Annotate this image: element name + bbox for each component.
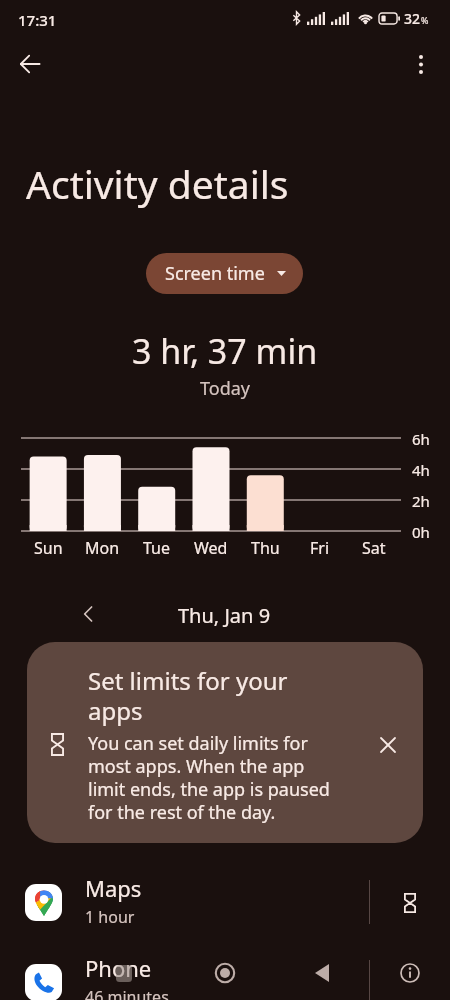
staticText: Activity details xyxy=(26,157,289,210)
staticText: Thu xyxy=(251,537,280,559)
staticText: Mon xyxy=(85,537,120,559)
staticText: 4h xyxy=(412,460,430,480)
staticText: Set limits for your apps xyxy=(88,664,336,727)
staticText: Phone xyxy=(85,953,152,983)
button[interactable]: Recent apps xyxy=(102,951,146,995)
staticText: Screen time xyxy=(165,261,265,286)
staticText: Fri xyxy=(310,537,330,559)
button[interactable]: Dismiss xyxy=(375,732,401,758)
button[interactable]: Previous day xyxy=(70,596,106,632)
button[interactable]: Phone xyxy=(0,955,450,1000)
staticText: 1 hour xyxy=(85,906,135,928)
staticText: 3 hr, 37 min xyxy=(132,328,318,374)
staticText: Wed xyxy=(194,537,228,559)
staticText: 2h xyxy=(412,491,430,511)
staticText: Sun xyxy=(34,537,63,559)
staticText: Maps xyxy=(85,873,142,903)
button[interactable]: Back xyxy=(8,42,52,86)
staticText: 6h xyxy=(412,429,430,449)
button[interactable]: Back xyxy=(300,951,344,995)
staticText: 46 minutes xyxy=(85,986,169,1000)
button[interactable]: Info xyxy=(388,951,432,995)
button[interactable]: Set limits for your apps xyxy=(27,642,423,843)
staticText: Today xyxy=(200,376,250,401)
button[interactable]: Set app timer xyxy=(394,887,426,919)
staticText: Tue xyxy=(143,537,171,559)
button[interactable]: More options xyxy=(399,42,443,86)
button[interactable]: Maps xyxy=(0,875,450,931)
staticText: % xyxy=(421,14,429,26)
staticText: 0h xyxy=(412,522,430,542)
staticText: You can set daily limits for most apps. … xyxy=(88,731,336,824)
staticText: 32 xyxy=(404,9,421,27)
staticText: Sat xyxy=(362,537,386,559)
staticText: 17:31 xyxy=(18,10,57,30)
staticText: Thu, Jan 9 xyxy=(178,602,271,629)
button[interactable]: Screen time xyxy=(146,253,303,294)
button[interactable]: Home xyxy=(203,951,247,995)
